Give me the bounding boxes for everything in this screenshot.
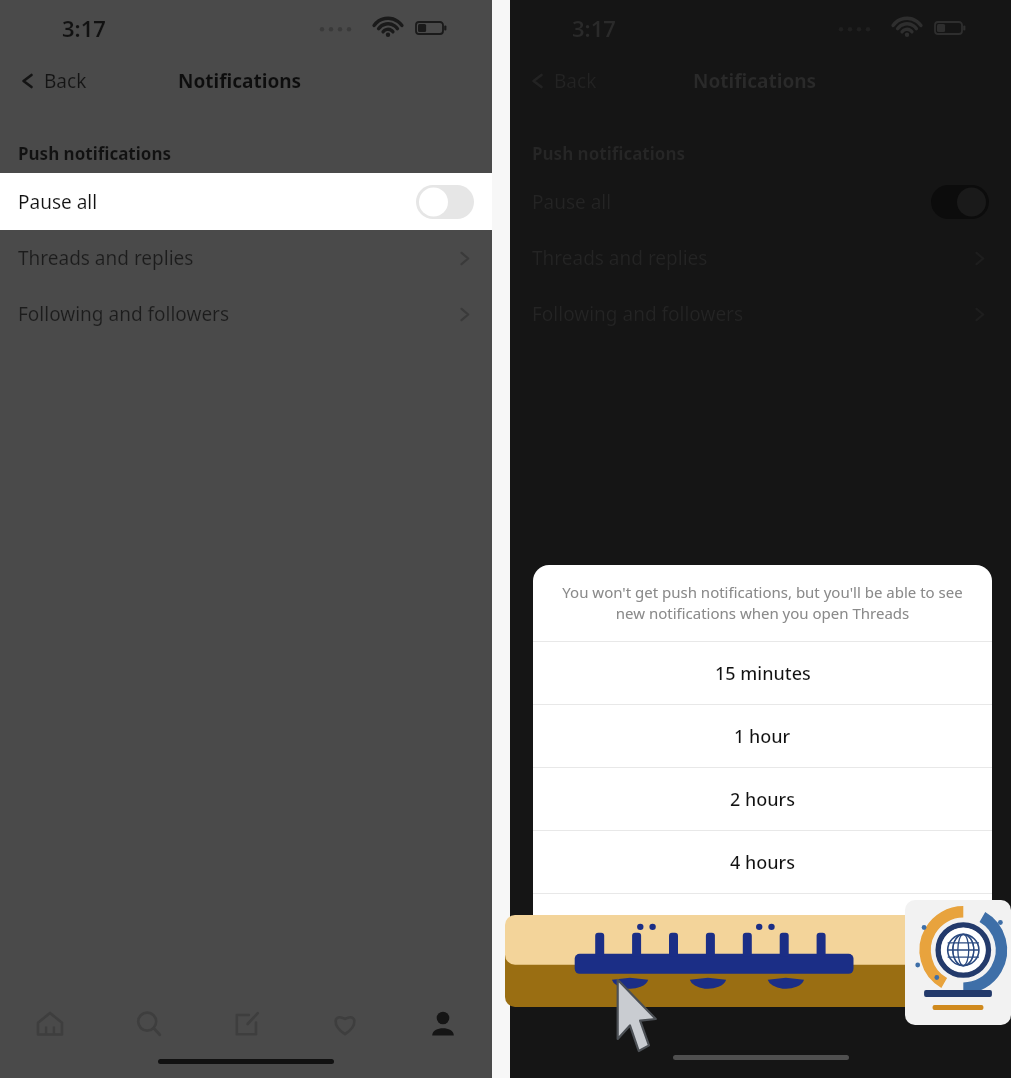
- staticText: 1 hour: [734, 724, 791, 749]
- button[interactable]: Cancel: [533, 957, 992, 990]
- staticText: Notifications: [693, 68, 817, 94]
- button[interactable]: 2 hours: [533, 768, 992, 830]
- button[interactable]: Pause all on: [931, 185, 989, 219]
- button[interactable]: Following and followers: [0, 286, 492, 342]
- staticText: Back: [554, 68, 597, 94]
- staticText: Push notifications: [532, 142, 686, 165]
- staticText: Threads and replies: [532, 245, 708, 271]
- staticText: 3:17: [572, 13, 616, 43]
- button[interactable]: Pause all off: [416, 185, 474, 219]
- staticText: 8 hours: [730, 913, 795, 938]
- button[interactable]: Back: [14, 62, 93, 100]
- button[interactable]: Threads and replies: [0, 230, 492, 286]
- staticText: Push notifications: [18, 142, 172, 165]
- button[interactable]: 15 minutes: [533, 642, 992, 704]
- staticText: Threads and replies: [18, 245, 194, 271]
- staticText: 3:17: [62, 13, 106, 43]
- staticText: Pause all: [18, 189, 98, 215]
- button[interactable]: Watermark logo: [905, 900, 1011, 1025]
- staticText: Notifications: [178, 68, 302, 94]
- button[interactable]: 8 hours: [533, 894, 992, 956]
- staticText: Pause all: [532, 189, 612, 215]
- button[interactable]: 1 hour: [533, 705, 992, 767]
- staticText: Back: [44, 68, 87, 94]
- staticText: 15 minutes: [715, 661, 811, 686]
- button[interactable]: 4 hours: [533, 831, 992, 893]
- staticText: 4 hours: [730, 850, 795, 875]
- staticText: Following and followers: [18, 301, 230, 327]
- staticText: Cancel: [734, 961, 792, 986]
- staticText: Following and followers: [532, 301, 744, 327]
- staticText: You won't get push notifications, but yo…: [555, 582, 970, 624]
- button[interactable]: Profile: [394, 989, 492, 1059]
- staticText: 2 hours: [730, 787, 795, 812]
- button[interactable]: Back: [524, 62, 603, 100]
- button[interactable]: Pause all: [0, 173, 492, 230]
